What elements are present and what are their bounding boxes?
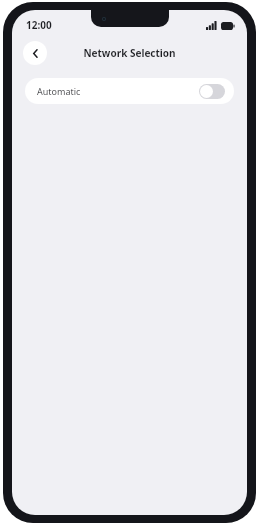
button[interactable]: Back bbox=[23, 41, 47, 65]
button[interactable]: Automatic bbox=[25, 78, 234, 104]
staticText: Automatic bbox=[37, 85, 81, 97]
staticText: 12:00 bbox=[26, 18, 52, 32]
staticText: Network Selection bbox=[83, 46, 176, 60]
